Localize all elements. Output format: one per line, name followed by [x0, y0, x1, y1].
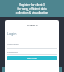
staticText: Register for client X — [1, 3, 63, 7]
staticText: Login — [7, 31, 17, 36]
staticText: CLIENT X — [27, 23, 38, 26]
staticText: REGISTER — [27, 57, 37, 60]
button[interactable]: Client X logo — [27, 23, 38, 26]
staticText: Username — [7, 42, 19, 45]
staticText: for easy, efficient data — [1, 7, 63, 11]
staticText: collection & visualization — [1, 11, 63, 15]
staticText: Password — [7, 50, 18, 53]
button[interactable]: REGISTER — [7, 56, 57, 60]
